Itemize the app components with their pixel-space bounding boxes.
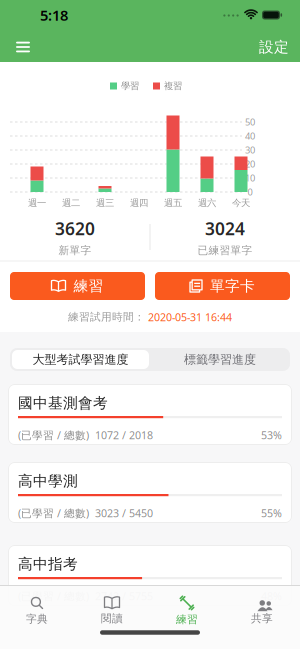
staticText: 週四 <box>130 197 148 209</box>
staticText: 練習 <box>176 613 198 626</box>
staticText: 53% <box>261 428 282 442</box>
staticText: 3620 <box>55 217 95 240</box>
staticText: (已學習 / 總數) 3023 / 5450 <box>18 506 153 520</box>
staticText: 大型考試學習進度 <box>32 352 128 367</box>
staticText: (已學習 / 總數) 2742 / 5755 <box>18 589 153 603</box>
staticText: 高中學測 <box>18 472 78 490</box>
button[interactable]: 共享 <box>225 591 299 631</box>
staticText: 2020-05-31 16:44 <box>148 310 232 324</box>
staticText: 練習 <box>73 277 103 295</box>
staticText: 新單字 <box>58 244 91 257</box>
button[interactable]: 設定 <box>259 38 289 56</box>
staticText: 20 <box>245 158 255 170</box>
button[interactable]: 單字卡 <box>155 272 290 300</box>
staticText: (已學習 / 總數) 1072 / 2018 <box>18 428 153 442</box>
button[interactable]: 國中基測會考 <box>8 384 292 445</box>
staticText: 國中基測會考 <box>18 394 108 412</box>
staticText: 今天 <box>232 197 250 209</box>
staticText: 3024 <box>205 217 245 240</box>
staticText: 閱讀 <box>101 612 123 625</box>
staticText: 週五 <box>164 197 182 209</box>
staticText: 50 <box>245 116 255 128</box>
staticText: 設定 <box>259 38 289 56</box>
staticText: 5:18 <box>40 5 68 25</box>
staticText: 週六 <box>198 197 216 209</box>
staticText: 30 <box>245 144 255 156</box>
staticText: 單字卡 <box>210 277 255 295</box>
button[interactable]: 高中指考 <box>8 545 292 606</box>
staticText: 10 <box>245 172 255 184</box>
staticText: 週二 <box>62 197 80 209</box>
staticText: 55% <box>261 506 282 520</box>
button[interactable]: 高中學測 <box>8 462 292 523</box>
staticText: 標籤學習進度 <box>184 352 256 367</box>
staticText: 複習 <box>164 80 182 92</box>
staticText: 練習試用時間： <box>68 310 145 323</box>
staticText: 字典 <box>26 612 48 625</box>
staticText: 週三 <box>96 197 114 209</box>
button[interactable]: 字典 <box>0 591 74 631</box>
staticText: 共享 <box>251 612 273 625</box>
staticText: 已練習單字 <box>197 244 252 257</box>
staticText: 學習 <box>121 80 139 92</box>
button[interactable]: 練習 <box>150 591 224 631</box>
button[interactable]: 選單 <box>13 39 33 55</box>
button[interactable]: 標籤學習進度 <box>155 350 285 369</box>
button[interactable]: 閱讀 <box>75 591 149 631</box>
staticText: 週一 <box>28 197 46 209</box>
button[interactable]: 練習 <box>10 272 145 300</box>
button[interactable]: 大型考試學習進度 <box>12 350 149 369</box>
staticText: 48% <box>261 589 282 603</box>
staticText: 0 <box>247 186 252 198</box>
staticText: 40 <box>245 130 255 142</box>
staticText: 高中指考 <box>18 555 78 573</box>
